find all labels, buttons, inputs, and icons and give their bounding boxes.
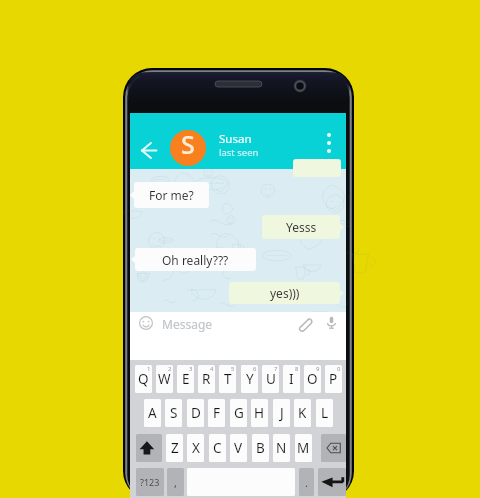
button[interactable]: T <box>219 365 236 393</box>
button[interactable]: Backspace <box>321 434 346 462</box>
button[interactable]: M <box>295 434 312 462</box>
staticText: 3 <box>189 365 193 373</box>
staticText: K <box>298 404 307 422</box>
staticText: B <box>256 439 265 457</box>
button[interactable]: P <box>325 365 342 393</box>
staticText: 1 <box>147 365 151 373</box>
button[interactable]: O <box>304 365 321 393</box>
staticText: S <box>181 130 195 161</box>
staticText: , <box>174 475 177 490</box>
staticText: J <box>280 404 284 422</box>
staticText: 4 <box>210 365 214 373</box>
button[interactable]: A <box>144 399 161 427</box>
button[interactable]: Contact avatar <box>170 130 206 166</box>
button[interactable]: C <box>209 434 226 462</box>
staticText: 0 <box>337 365 341 373</box>
button[interactable]: S <box>165 399 182 427</box>
staticText: S <box>170 404 178 422</box>
button[interactable]: K <box>294 399 311 427</box>
staticText: N <box>276 439 287 457</box>
button[interactable]: Record voice message <box>323 314 339 330</box>
button[interactable]: B <box>252 434 269 462</box>
staticText: Oh really??? <box>162 252 229 268</box>
button[interactable]: F <box>208 399 225 427</box>
button[interactable]: N <box>273 434 290 462</box>
button[interactable]: V <box>230 434 247 462</box>
staticText: Q <box>138 370 149 388</box>
button[interactable]: Enter <box>318 468 346 496</box>
staticText: X <box>192 439 200 457</box>
button[interactable]: For me? <box>134 182 209 208</box>
staticText: last seen <box>219 146 259 159</box>
button[interactable]: W <box>156 365 173 393</box>
staticText: 6 <box>253 365 257 373</box>
button[interactable]: yes))) <box>229 282 340 304</box>
button[interactable]: G <box>230 399 247 427</box>
button[interactable]: Attach file <box>294 314 313 333</box>
staticText: G <box>234 404 244 422</box>
button[interactable]: Oh really??? <box>135 248 256 271</box>
staticText: 8 <box>295 365 299 373</box>
staticText: V <box>234 439 243 457</box>
staticText: P <box>329 370 338 388</box>
staticText: 7 <box>274 365 278 373</box>
button[interactable]: J <box>273 399 290 427</box>
button[interactable]: I <box>283 365 300 393</box>
staticText: T <box>224 370 232 388</box>
staticText: M <box>297 439 310 457</box>
staticText: D <box>191 404 201 422</box>
button[interactable]: Q <box>135 365 152 393</box>
button[interactable]: H <box>251 399 268 427</box>
button[interactable]: D <box>187 399 204 427</box>
button[interactable]: Emoji <box>137 314 155 332</box>
staticText: O <box>307 370 318 388</box>
button[interactable]: R <box>198 365 215 393</box>
button[interactable]: L <box>316 399 333 427</box>
staticText: yes))) <box>270 285 300 301</box>
staticText: . <box>305 475 308 490</box>
button[interactable]: More options <box>316 130 342 156</box>
staticText: Message <box>162 316 213 332</box>
button[interactable]: . <box>299 468 314 496</box>
staticText: U <box>266 370 276 388</box>
button[interactable]: Back <box>136 137 162 163</box>
staticText: A <box>148 404 157 422</box>
staticText: Yesss <box>286 219 317 235</box>
staticText: ?123 <box>140 476 160 488</box>
button[interactable]: , <box>167 468 184 496</box>
staticText: I <box>289 370 294 388</box>
button[interactable]: Z <box>166 434 183 462</box>
button[interactable]: Yesss <box>262 215 340 239</box>
staticText: For me? <box>149 187 194 203</box>
button[interactable]: X <box>187 434 204 462</box>
button[interactable]: Shift <box>136 434 162 462</box>
staticText: 2 <box>168 365 172 373</box>
staticText: Susan <box>219 131 252 147</box>
staticText: H <box>254 404 265 422</box>
staticText: C <box>213 439 222 457</box>
staticText: W <box>158 370 171 388</box>
button[interactable]: Y <box>241 365 258 393</box>
button[interactable]: E <box>177 365 194 393</box>
staticText: 9 <box>316 365 320 373</box>
staticText: L <box>321 404 329 422</box>
staticText: E <box>182 370 190 388</box>
staticText: R <box>202 370 211 388</box>
staticText: 5 <box>231 365 235 373</box>
staticText: Y <box>246 370 254 388</box>
button[interactable]: U <box>262 365 279 393</box>
staticText: F <box>213 404 221 422</box>
staticText: Z <box>171 439 179 457</box>
button[interactable]: ?123 <box>136 468 164 496</box>
